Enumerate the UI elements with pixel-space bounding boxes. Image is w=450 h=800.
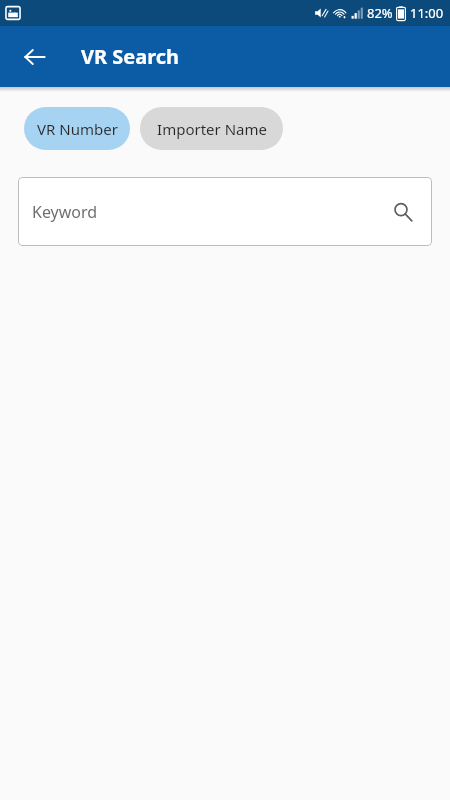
- button[interactable]: Importer Name: [140, 107, 283, 150]
- button[interactable]: Keyword: [18, 177, 432, 246]
- staticText: 11:00: [410, 4, 444, 22]
- staticText: 82%: [367, 4, 393, 22]
- button[interactable]: VR Number: [24, 107, 130, 150]
- staticText: Importer Name: [157, 119, 267, 139]
- button[interactable]: Back: [11, 33, 59, 81]
- button[interactable]: Search: [388, 197, 418, 227]
- staticText: VR Search: [81, 43, 180, 70]
- staticText: Keyword: [32, 201, 98, 223]
- staticText: VR Number: [37, 119, 118, 139]
